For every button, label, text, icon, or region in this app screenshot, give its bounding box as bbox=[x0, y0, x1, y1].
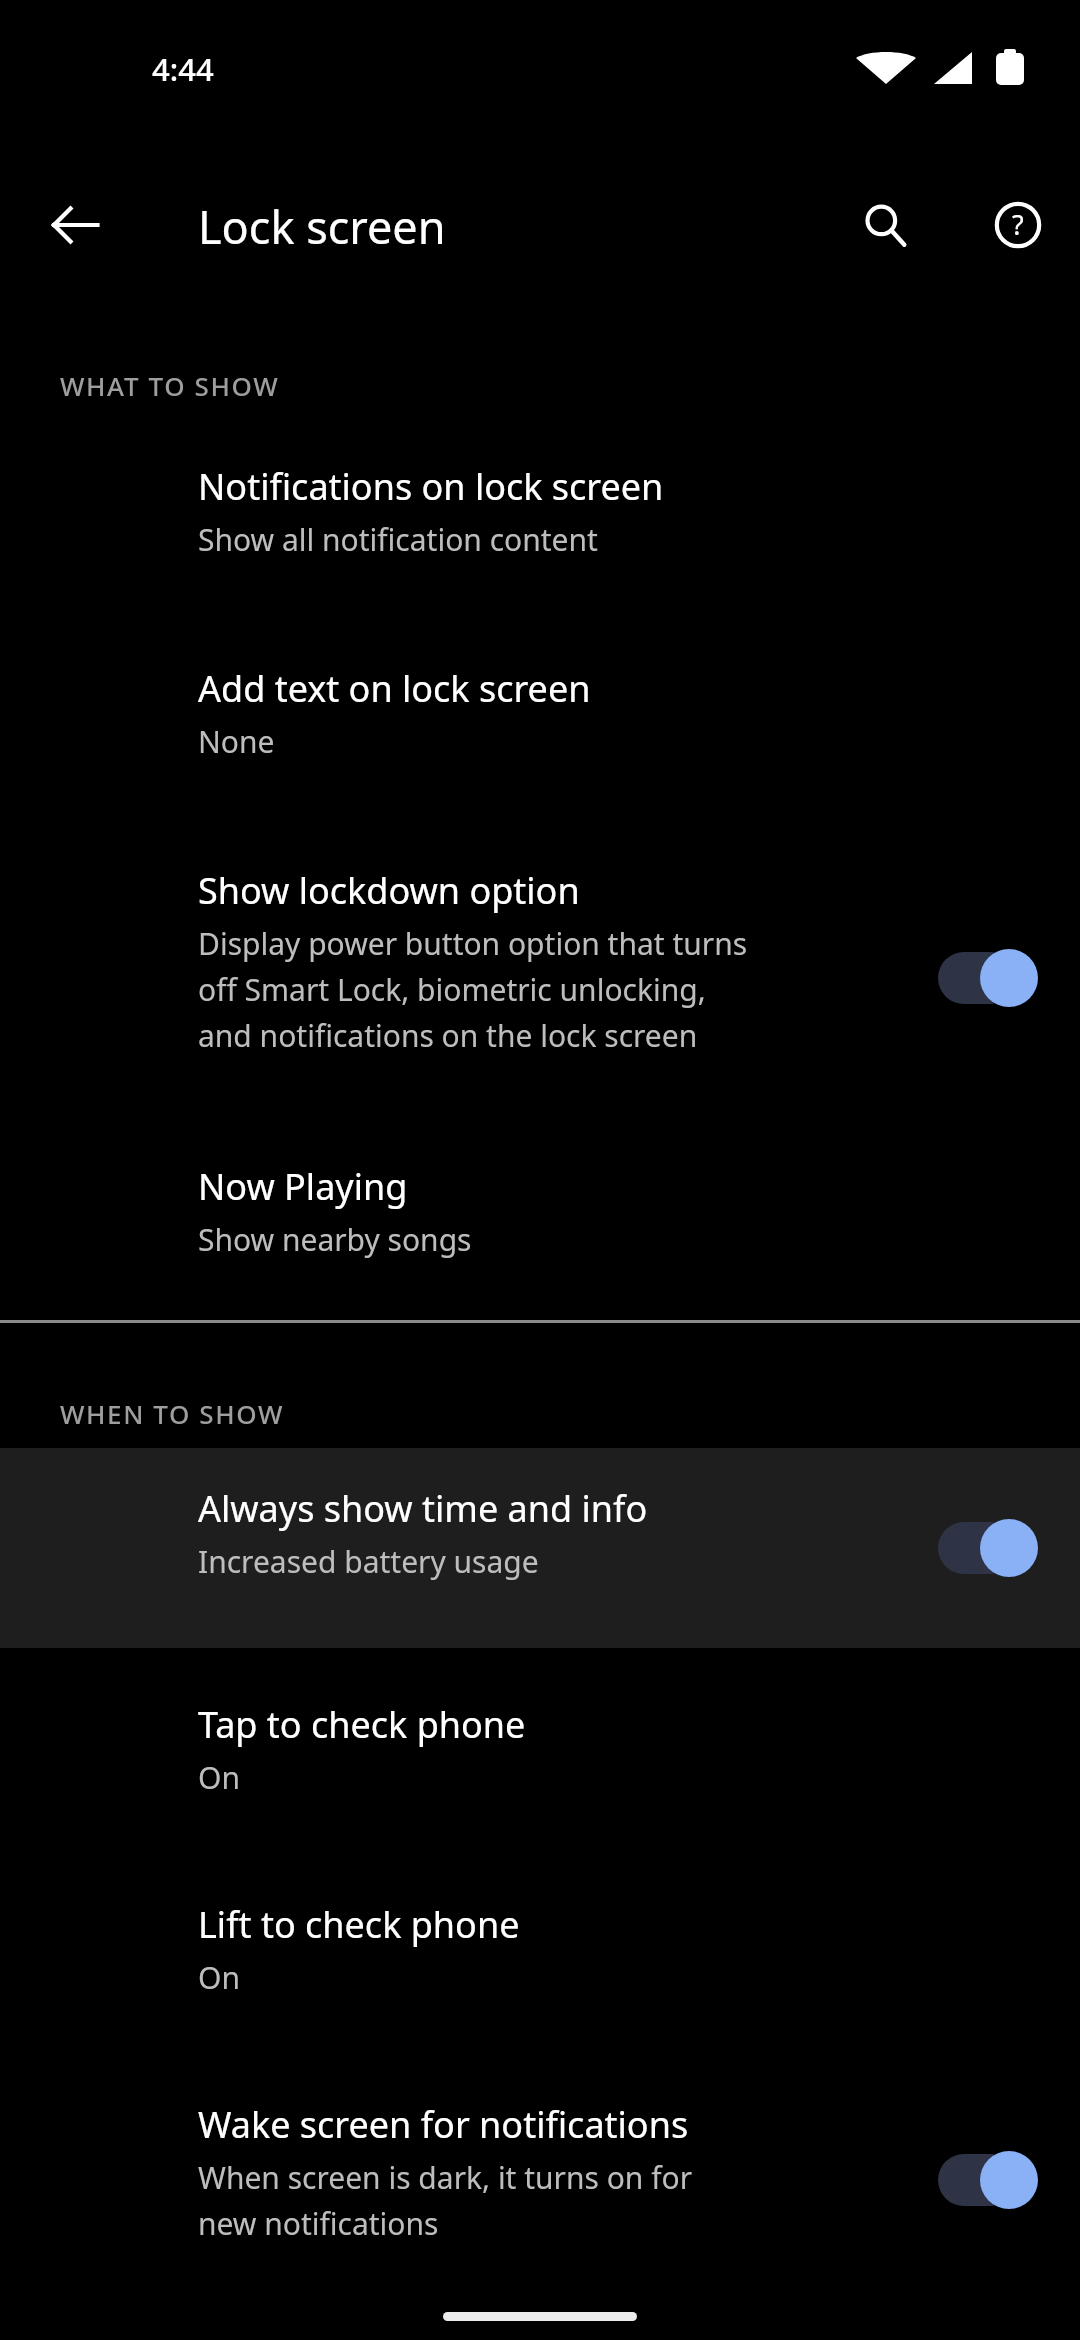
button[interactable] bbox=[0, 838, 1080, 1094]
button[interactable] bbox=[0, 1872, 1080, 2058]
button[interactable]: Toggle bbox=[912, 1500, 1062, 1596]
staticText: Add text on lock screen bbox=[198, 664, 591, 713]
staticText: When screen is dark, it turns on for new… bbox=[198, 2157, 693, 2244]
staticText: Lock screen bbox=[198, 196, 446, 257]
button[interactable]: Toggle bbox=[912, 930, 1062, 1026]
button[interactable] bbox=[0, 1448, 1080, 1648]
staticText: ? bbox=[1012, 206, 1024, 243]
staticText: Show nearby songs bbox=[198, 1219, 472, 1260]
staticText: Now Playing bbox=[198, 1162, 408, 1211]
staticText: On bbox=[198, 1957, 240, 1998]
staticText: Lift to check phone bbox=[198, 1900, 520, 1949]
staticText: On bbox=[198, 1757, 240, 1798]
staticText: Show lockdown option bbox=[198, 866, 580, 915]
button[interactable] bbox=[0, 1134, 1080, 1320]
button[interactable]: Toggle bbox=[912, 2132, 1062, 2228]
staticText: Notifications on lock screen bbox=[198, 462, 664, 511]
staticText: None bbox=[198, 721, 275, 762]
staticText: Increased battery usage bbox=[198, 1541, 539, 1582]
staticText: Show all notification content bbox=[198, 519, 598, 560]
staticText: WHAT TO SHOW bbox=[60, 368, 280, 403]
staticText: 4:44 bbox=[152, 48, 214, 90]
button[interactable]: Back bbox=[30, 180, 120, 270]
button[interactable] bbox=[0, 2072, 1080, 2308]
staticText: WHEN TO SHOW bbox=[60, 1396, 285, 1431]
button[interactable]: Search bbox=[840, 180, 930, 270]
button[interactable] bbox=[0, 636, 1080, 822]
button[interactable]: Help bbox=[973, 180, 1063, 270]
staticText: Tap to check phone bbox=[198, 1700, 526, 1749]
staticText: Display power button option that turns o… bbox=[198, 923, 748, 1056]
button[interactable] bbox=[0, 1672, 1080, 1858]
button[interactable] bbox=[0, 434, 1080, 624]
staticText: Always show time and info bbox=[198, 1484, 648, 1533]
staticText: Wake screen for notifications bbox=[198, 2100, 689, 2149]
